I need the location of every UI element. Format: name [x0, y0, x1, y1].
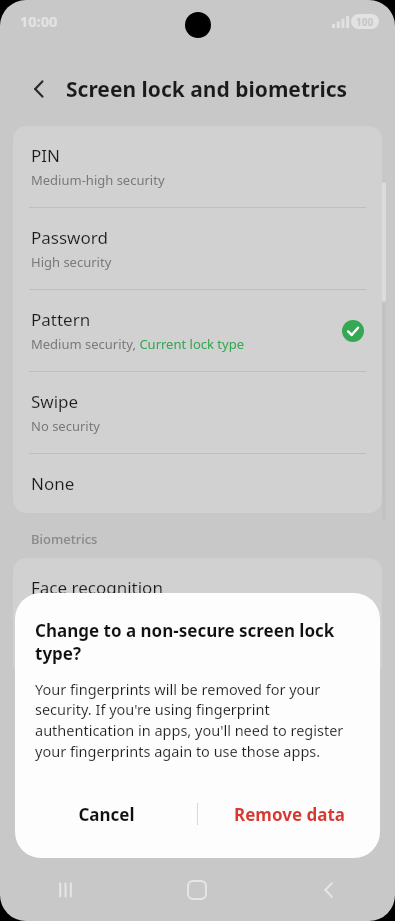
button[interactable]: None — [13, 454, 382, 513]
staticText: 10:00 — [20, 11, 58, 31]
staticText: Screen lock and biometrics — [66, 75, 348, 104]
button[interactable]: Recents — [0, 859, 131, 921]
staticText: Change to a non-secure screen lock type? — [35, 619, 360, 665]
staticText: Face recognition — [31, 576, 163, 599]
staticText: Current lock type — [136, 335, 244, 353]
staticText: 100 — [356, 15, 374, 29]
button[interactable]: Home — [131, 859, 263, 921]
staticText: Password — [31, 226, 108, 249]
staticText: Medium-high security — [31, 171, 165, 189]
staticText: No security — [31, 417, 101, 435]
staticText: Cancel — [78, 803, 135, 826]
button[interactable]: Navigate up — [22, 71, 58, 107]
staticText: Swipe — [31, 390, 79, 413]
staticText: None — [31, 472, 75, 495]
staticText: Pattern — [31, 308, 91, 331]
staticText: Medium security, — [31, 335, 136, 353]
button[interactable]: Remove data — [198, 792, 380, 836]
staticText: Biometrics — [31, 530, 98, 548]
staticText: High security — [31, 253, 112, 271]
staticText: Remove data — [234, 803, 345, 826]
staticText: Your fingerprints will be removed for yo… — [35, 679, 360, 762]
button[interactable]: PIN — [13, 126, 382, 207]
button[interactable]: Face recognition — [13, 558, 382, 617]
button[interactable]: Password — [13, 208, 382, 289]
button[interactable]: Cancel — [15, 792, 197, 836]
button[interactable]: Back — [263, 859, 395, 921]
button[interactable]: Swipe — [13, 372, 382, 453]
staticText: PIN — [31, 144, 60, 167]
button[interactable]: Pattern — [13, 290, 382, 371]
